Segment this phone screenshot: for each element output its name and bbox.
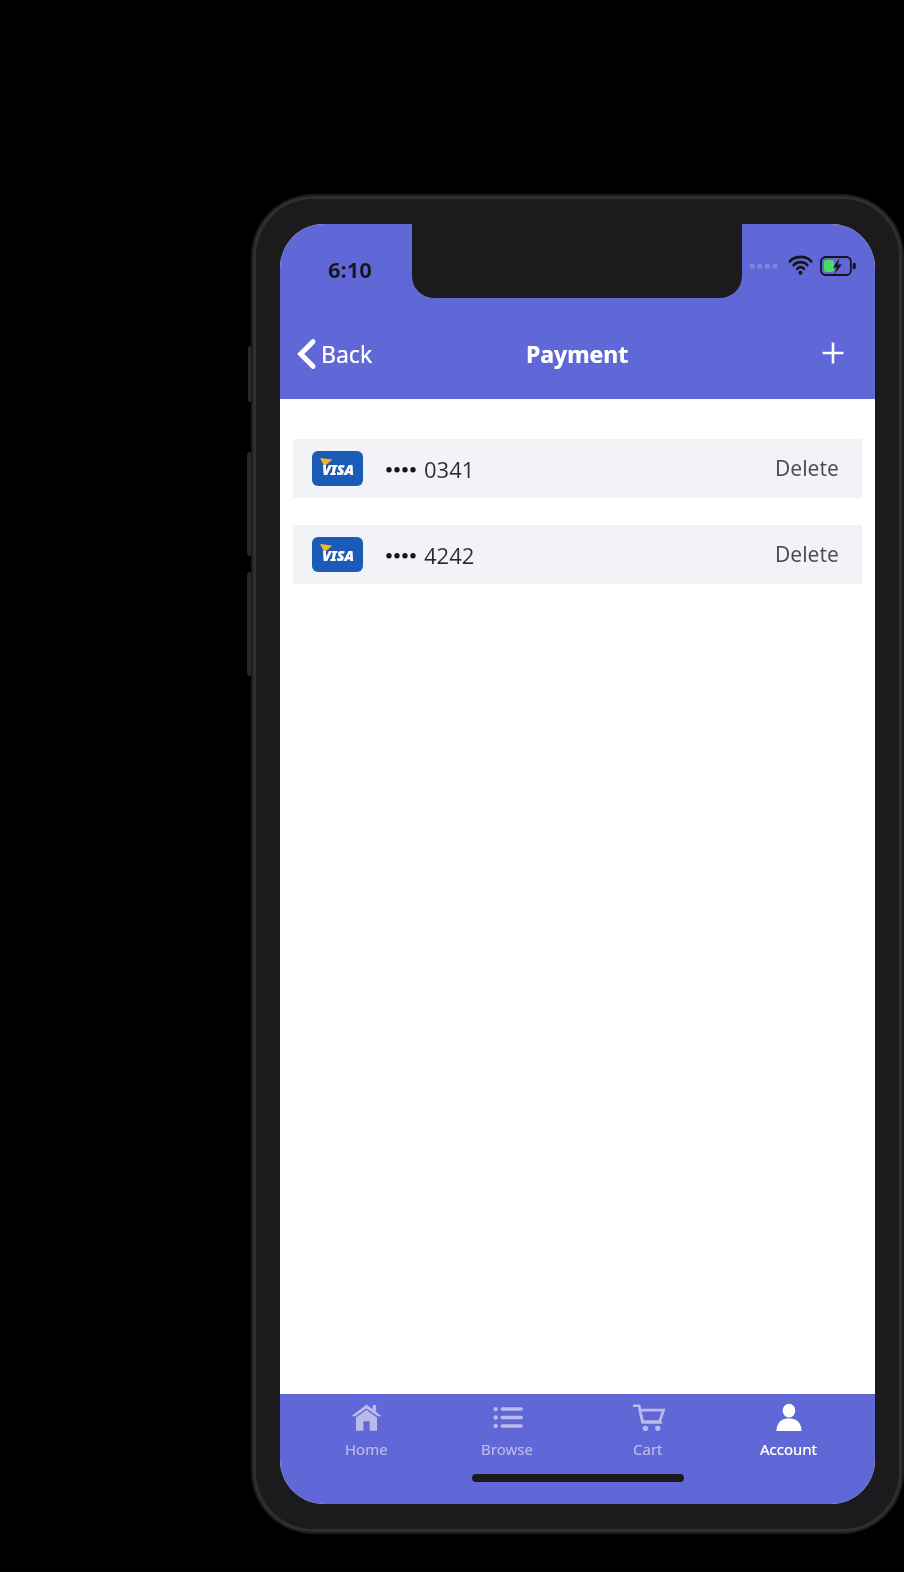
button[interactable]: VISA — [293, 525, 862, 584]
staticText: Account — [760, 1439, 818, 1459]
button[interactable]: Delete — [771, 448, 843, 489]
staticText: VISA — [322, 546, 354, 565]
staticText: Delete — [775, 454, 839, 483]
staticText: VISA — [322, 460, 354, 479]
staticText: Back — [321, 338, 373, 369]
button[interactable]: Add payment method — [811, 331, 855, 375]
button[interactable]: Delete — [771, 534, 843, 575]
staticText: 0341 — [424, 454, 475, 484]
button[interactable]: Back — [290, 332, 381, 375]
staticText: Browse — [481, 1439, 533, 1459]
button[interactable]: Cart — [593, 1394, 703, 1478]
button[interactable]: Home — [311, 1394, 421, 1478]
staticText: Home — [345, 1439, 388, 1459]
button[interactable]: Account — [734, 1394, 844, 1478]
staticText: Delete — [775, 540, 839, 569]
staticText: Payment — [526, 338, 629, 369]
button[interactable]: VISA — [293, 439, 862, 498]
staticText: 6:10 — [328, 254, 372, 284]
button[interactable]: Browse — [452, 1394, 562, 1478]
staticText: 4242 — [424, 540, 475, 570]
staticText: Cart — [633, 1439, 663, 1459]
